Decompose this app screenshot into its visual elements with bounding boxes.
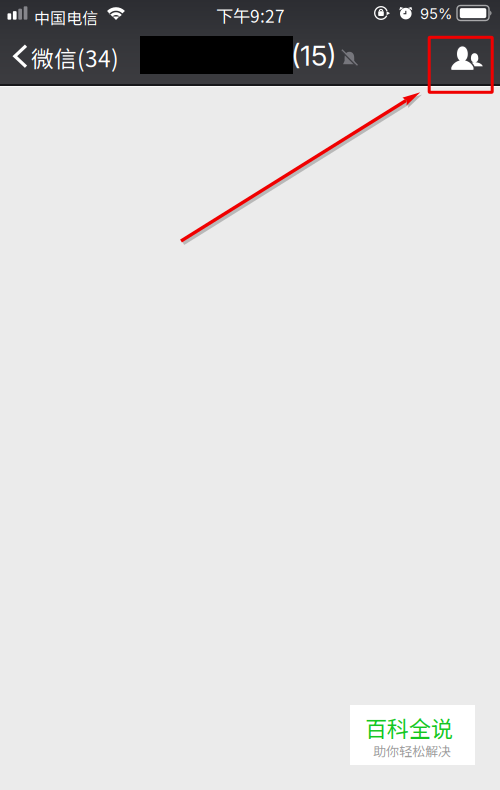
- staticText: 百科全说: [365, 711, 453, 743]
- staticText: 95%: [420, 5, 452, 23]
- staticText: (15): [291, 38, 336, 72]
- button[interactable]: 微信(34): [0, 36, 125, 84]
- staticText: 下午9:27: [216, 3, 285, 28]
- button[interactable]: Group members: [431, 36, 495, 84]
- staticText: 微信(34): [31, 41, 119, 74]
- staticText: 助你轻松解决: [373, 741, 451, 760]
- staticText: 中国电信: [34, 6, 98, 29]
